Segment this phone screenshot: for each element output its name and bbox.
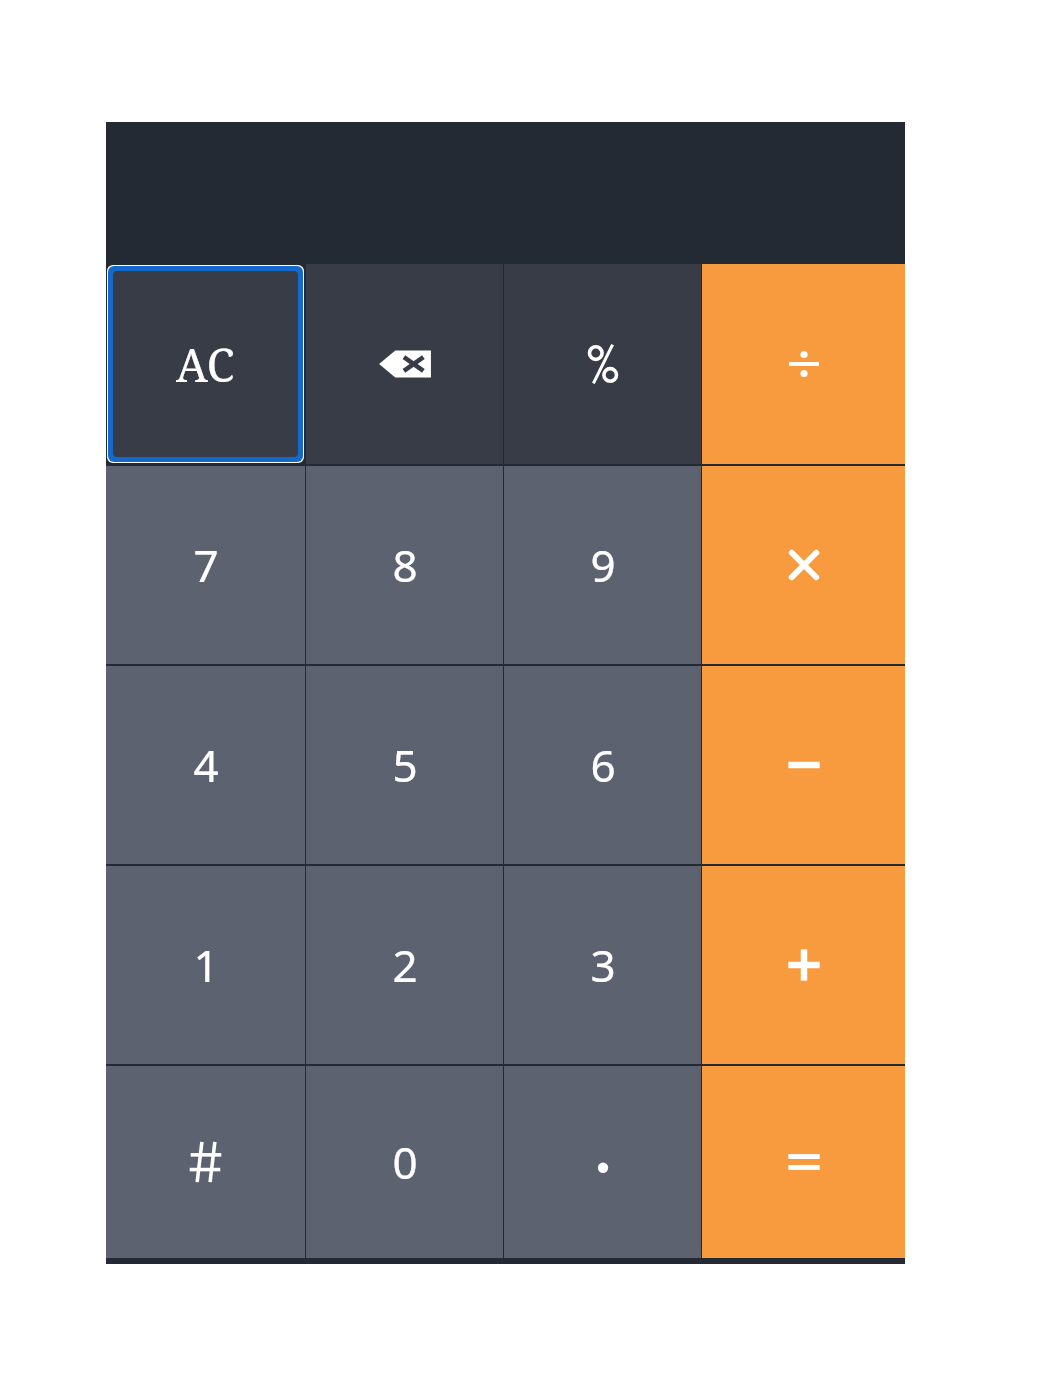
- button[interactable]: 7: [106, 466, 305, 664]
- button[interactable]: 0: [306, 1066, 503, 1258]
- staticText: 9: [590, 535, 616, 595]
- staticText: 1: [193, 935, 219, 995]
- button[interactable]: 9: [504, 466, 701, 664]
- button[interactable]: Divide: [702, 264, 905, 464]
- button[interactable]: 3: [504, 866, 701, 1064]
- button[interactable]: 2: [306, 866, 503, 1064]
- staticText: 3: [590, 935, 616, 995]
- staticText: 5: [392, 735, 418, 795]
- button[interactable]: 4: [106, 666, 305, 864]
- button[interactable]: 1: [106, 866, 305, 1064]
- staticText: AC: [176, 334, 235, 395]
- staticText: 4: [193, 735, 219, 795]
- staticText: 2: [392, 935, 418, 995]
- button[interactable]: Backspace: [306, 264, 503, 464]
- button[interactable]: AC: [113, 271, 298, 457]
- button[interactable]: Operator: [702, 666, 905, 864]
- button[interactable]: 6: [504, 666, 701, 864]
- button[interactable]: Equals: [702, 1066, 905, 1258]
- button[interactable]: Operator: [702, 866, 905, 1064]
- staticText: 7: [193, 535, 219, 595]
- button[interactable]: Percent: [504, 264, 701, 464]
- button[interactable]: Decimal point: [504, 1066, 701, 1258]
- button[interactable]: Operator: [702, 466, 905, 664]
- staticText: 8: [392, 535, 418, 595]
- button[interactable]: 8: [306, 466, 503, 664]
- button[interactable]: 5: [306, 666, 503, 864]
- staticText: 6: [590, 735, 616, 795]
- button[interactable]: Hash: [106, 1066, 305, 1258]
- staticText: 0: [392, 1132, 418, 1192]
